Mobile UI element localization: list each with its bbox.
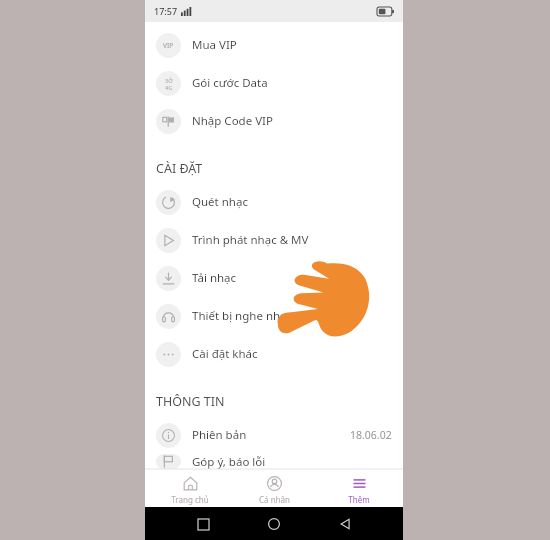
staticText: Phiên bản [192,427,247,443]
staticText: 4G [165,84,173,91]
staticText: Mua VIP [192,37,237,53]
staticText: Gói cước Data [192,75,268,91]
button[interactable]: Thiết bị nghe nhạc [145,297,403,335]
other: Trang chủ [183,476,198,491]
button[interactable]: Phiên bản [145,416,403,454]
staticText: CÀI ĐẶT [156,160,203,177]
button[interactable]: Cài đặt khác [145,335,403,373]
staticText: THÔNG TIN [156,393,225,410]
staticText: VIP [163,41,174,50]
button[interactable]: Home [261,511,287,537]
staticText: 17:57 [154,5,178,17]
button[interactable]: 3Ở [145,64,403,102]
button[interactable]: Cá nhân [234,469,314,507]
staticText: Cài đặt khác [192,346,258,362]
button[interactable]: Trình phát nhạc & MV [145,221,403,259]
button[interactable]: Thêm [319,469,399,507]
staticText: 3Ở [165,77,173,84]
staticText: Thiết bị nghe nhạc [192,308,293,324]
staticText: 18.06.02 [350,428,392,442]
button[interactable]: Recents [190,511,216,537]
button[interactable]: Tải nhạc [145,259,403,297]
button[interactable]: VIP [145,26,403,64]
staticText: Góp ý, báo lỗi [192,454,266,469]
button[interactable]: Nhập Code VIP [145,102,403,140]
button[interactable]: Back [332,511,358,537]
staticText: Quét nhạc [192,194,248,210]
staticText: Trang chủ [171,494,209,505]
other: Thêm [352,476,367,491]
other: Cá nhân [267,476,282,491]
button[interactable]: Góp ý, báo lỗi [145,454,403,469]
button[interactable]: Quét nhạc [145,183,403,221]
staticText: Trình phát nhạc & MV [192,232,309,248]
staticText: Cá nhân [259,494,290,505]
staticText: Nhập Code VIP [192,113,273,129]
staticText: Thêm [348,494,370,505]
button[interactable]: Trang chủ [150,469,230,507]
staticText: Tải nhạc [192,270,237,286]
